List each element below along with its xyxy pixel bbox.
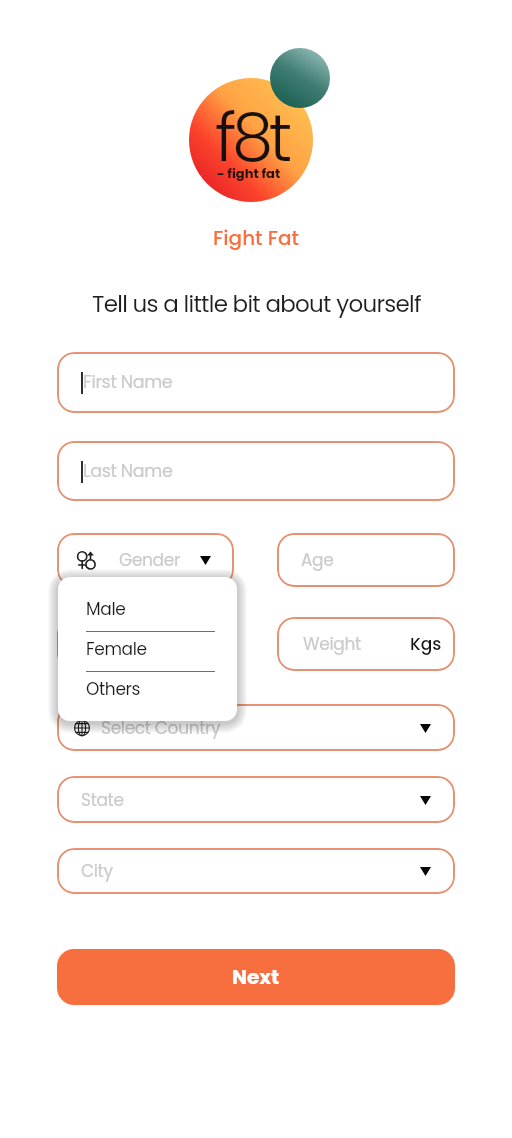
button[interactable]: Next (57, 949, 455, 1005)
staticText: f8t (215, 92, 288, 184)
staticText: City (81, 859, 113, 883)
button[interactable]: State (57, 776, 455, 823)
staticText: Height (81, 632, 134, 656)
staticText: Age (301, 548, 334, 572)
button[interactable]: Height (57, 617, 234, 671)
button[interactable]: Country (57, 704, 455, 751)
button[interactable]: Male (58, 592, 237, 631)
staticText: Select Country (101, 716, 221, 740)
staticText: - fight fat (217, 164, 281, 182)
button[interactable]: Age (277, 533, 455, 587)
button[interactable]: First Name (57, 352, 455, 413)
staticText: Gender (119, 548, 180, 572)
button[interactable]: Others (58, 672, 237, 711)
staticText: Tell us a little bit about yourself (92, 288, 421, 320)
staticText: State (81, 788, 124, 812)
button[interactable]: Weight (277, 617, 455, 671)
staticText: Fight Fat (213, 224, 300, 252)
staticText: Others (86, 677, 141, 701)
other: Gender (77, 551, 97, 570)
staticText: First Name (83, 370, 173, 395)
button[interactable]: Female (58, 632, 237, 671)
staticText: Female (86, 637, 147, 661)
button[interactable]: Last Name (57, 441, 455, 501)
other: Country (74, 720, 90, 736)
staticText: Kgs (410, 632, 442, 656)
staticText: Last Name (83, 459, 173, 484)
staticText: Male (86, 597, 126, 621)
button[interactable]: Gender (57, 533, 234, 587)
staticText: Weight (303, 632, 361, 656)
button[interactable]: City (57, 848, 455, 894)
staticText: Next (232, 963, 280, 991)
